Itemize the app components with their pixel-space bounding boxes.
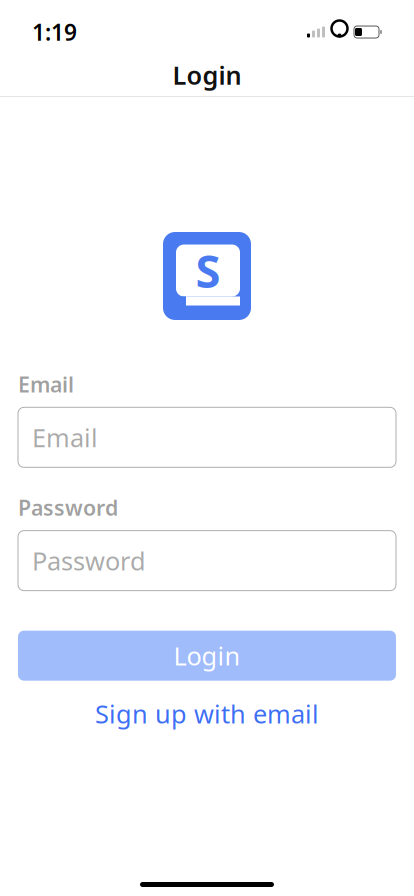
staticText: Email [32, 420, 98, 454]
staticText: Login [172, 58, 241, 92]
button[interactable]: Sign up with email [18, 697, 396, 731]
button[interactable]: Login [18, 631, 396, 681]
staticText: S [195, 240, 220, 301]
staticText: Password [18, 493, 118, 522]
staticText: Email [18, 370, 74, 398]
staticText: Login [173, 639, 240, 672]
staticText: Password [32, 544, 146, 577]
staticText: Sign up with email [95, 697, 319, 730]
staticText: 1:19 [32, 17, 77, 47]
